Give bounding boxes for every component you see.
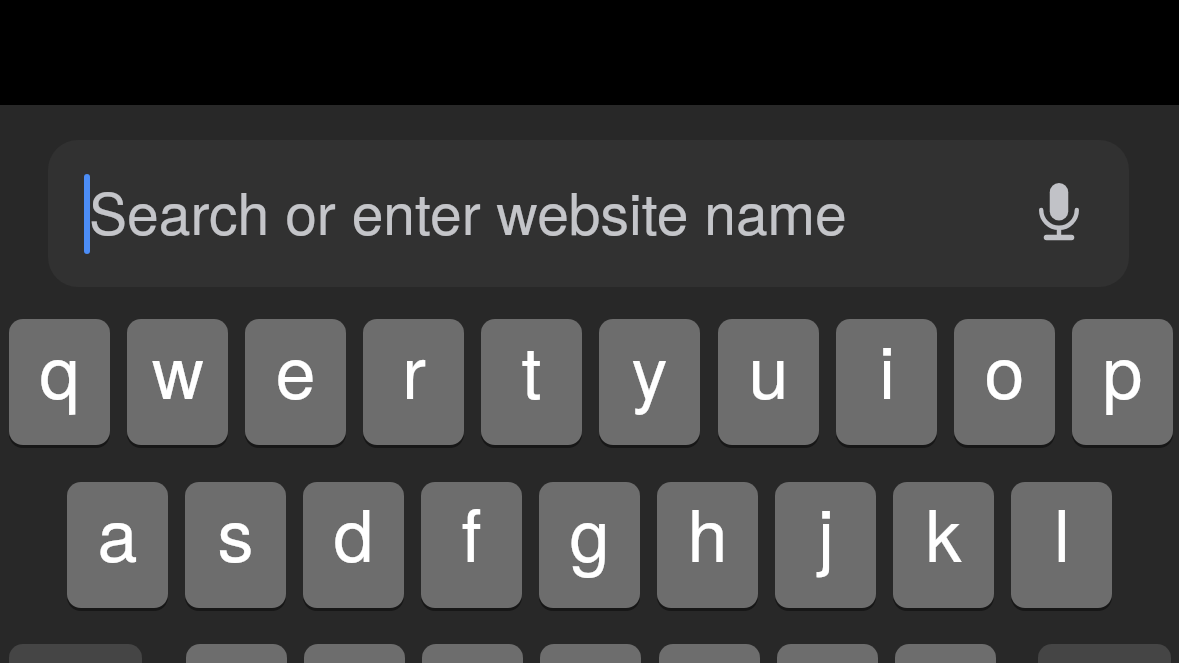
button[interactable]: f	[421, 482, 522, 608]
button[interactable]: n	[777, 644, 878, 663]
staticText: w	[152, 319, 204, 419]
staticText: p	[1102, 319, 1143, 419]
button[interactable]: s	[185, 482, 286, 608]
staticText: t	[521, 319, 542, 419]
button[interactable]: y	[599, 319, 700, 445]
button[interactable]: v	[540, 644, 641, 663]
staticText: e	[275, 319, 316, 419]
staticText: h	[687, 482, 728, 582]
button[interactable]: Backspace	[1038, 644, 1171, 663]
button[interactable]: d	[303, 482, 404, 608]
button[interactable]: u	[718, 319, 819, 445]
button[interactable]: j	[775, 482, 876, 608]
staticText: a	[97, 482, 138, 582]
staticText: o	[984, 319, 1025, 419]
button[interactable]: q	[9, 319, 110, 445]
button[interactable]: g	[539, 482, 640, 608]
button[interactable]: Voice search	[1029, 182, 1089, 242]
staticText: f	[461, 482, 482, 582]
staticText: q	[39, 319, 80, 419]
staticText: l	[1054, 482, 1070, 582]
button[interactable]: w	[127, 319, 228, 445]
staticText: y	[631, 319, 668, 419]
button[interactable]: b	[659, 644, 760, 663]
button[interactable]: c	[422, 644, 523, 663]
button[interactable]: a	[67, 482, 168, 608]
button[interactable]: t	[481, 319, 582, 445]
button[interactable]: i	[836, 319, 937, 445]
button[interactable]: e	[245, 319, 346, 445]
staticText: i	[879, 319, 895, 419]
button[interactable]: Shift	[9, 644, 142, 663]
staticText: j	[818, 482, 834, 582]
button[interactable]: m	[895, 644, 996, 663]
staticText: Search or enter website name	[89, 170, 847, 252]
button[interactable]: Search or enter website name	[48, 140, 1129, 287]
button[interactable]: o	[954, 319, 1055, 445]
button[interactable]: l	[1011, 482, 1112, 608]
button[interactable]: r	[363, 319, 464, 445]
staticText: k	[925, 482, 962, 582]
button[interactable]: h	[657, 482, 758, 608]
staticText: d	[333, 482, 374, 582]
staticText: s	[217, 482, 254, 582]
button[interactable]: k	[893, 482, 994, 608]
staticText: r	[402, 319, 426, 419]
staticText: u	[748, 319, 789, 419]
button[interactable]: x	[304, 644, 405, 663]
button[interactable]: p	[1072, 319, 1173, 445]
button[interactable]: z	[186, 644, 287, 663]
staticText: g	[569, 482, 610, 582]
